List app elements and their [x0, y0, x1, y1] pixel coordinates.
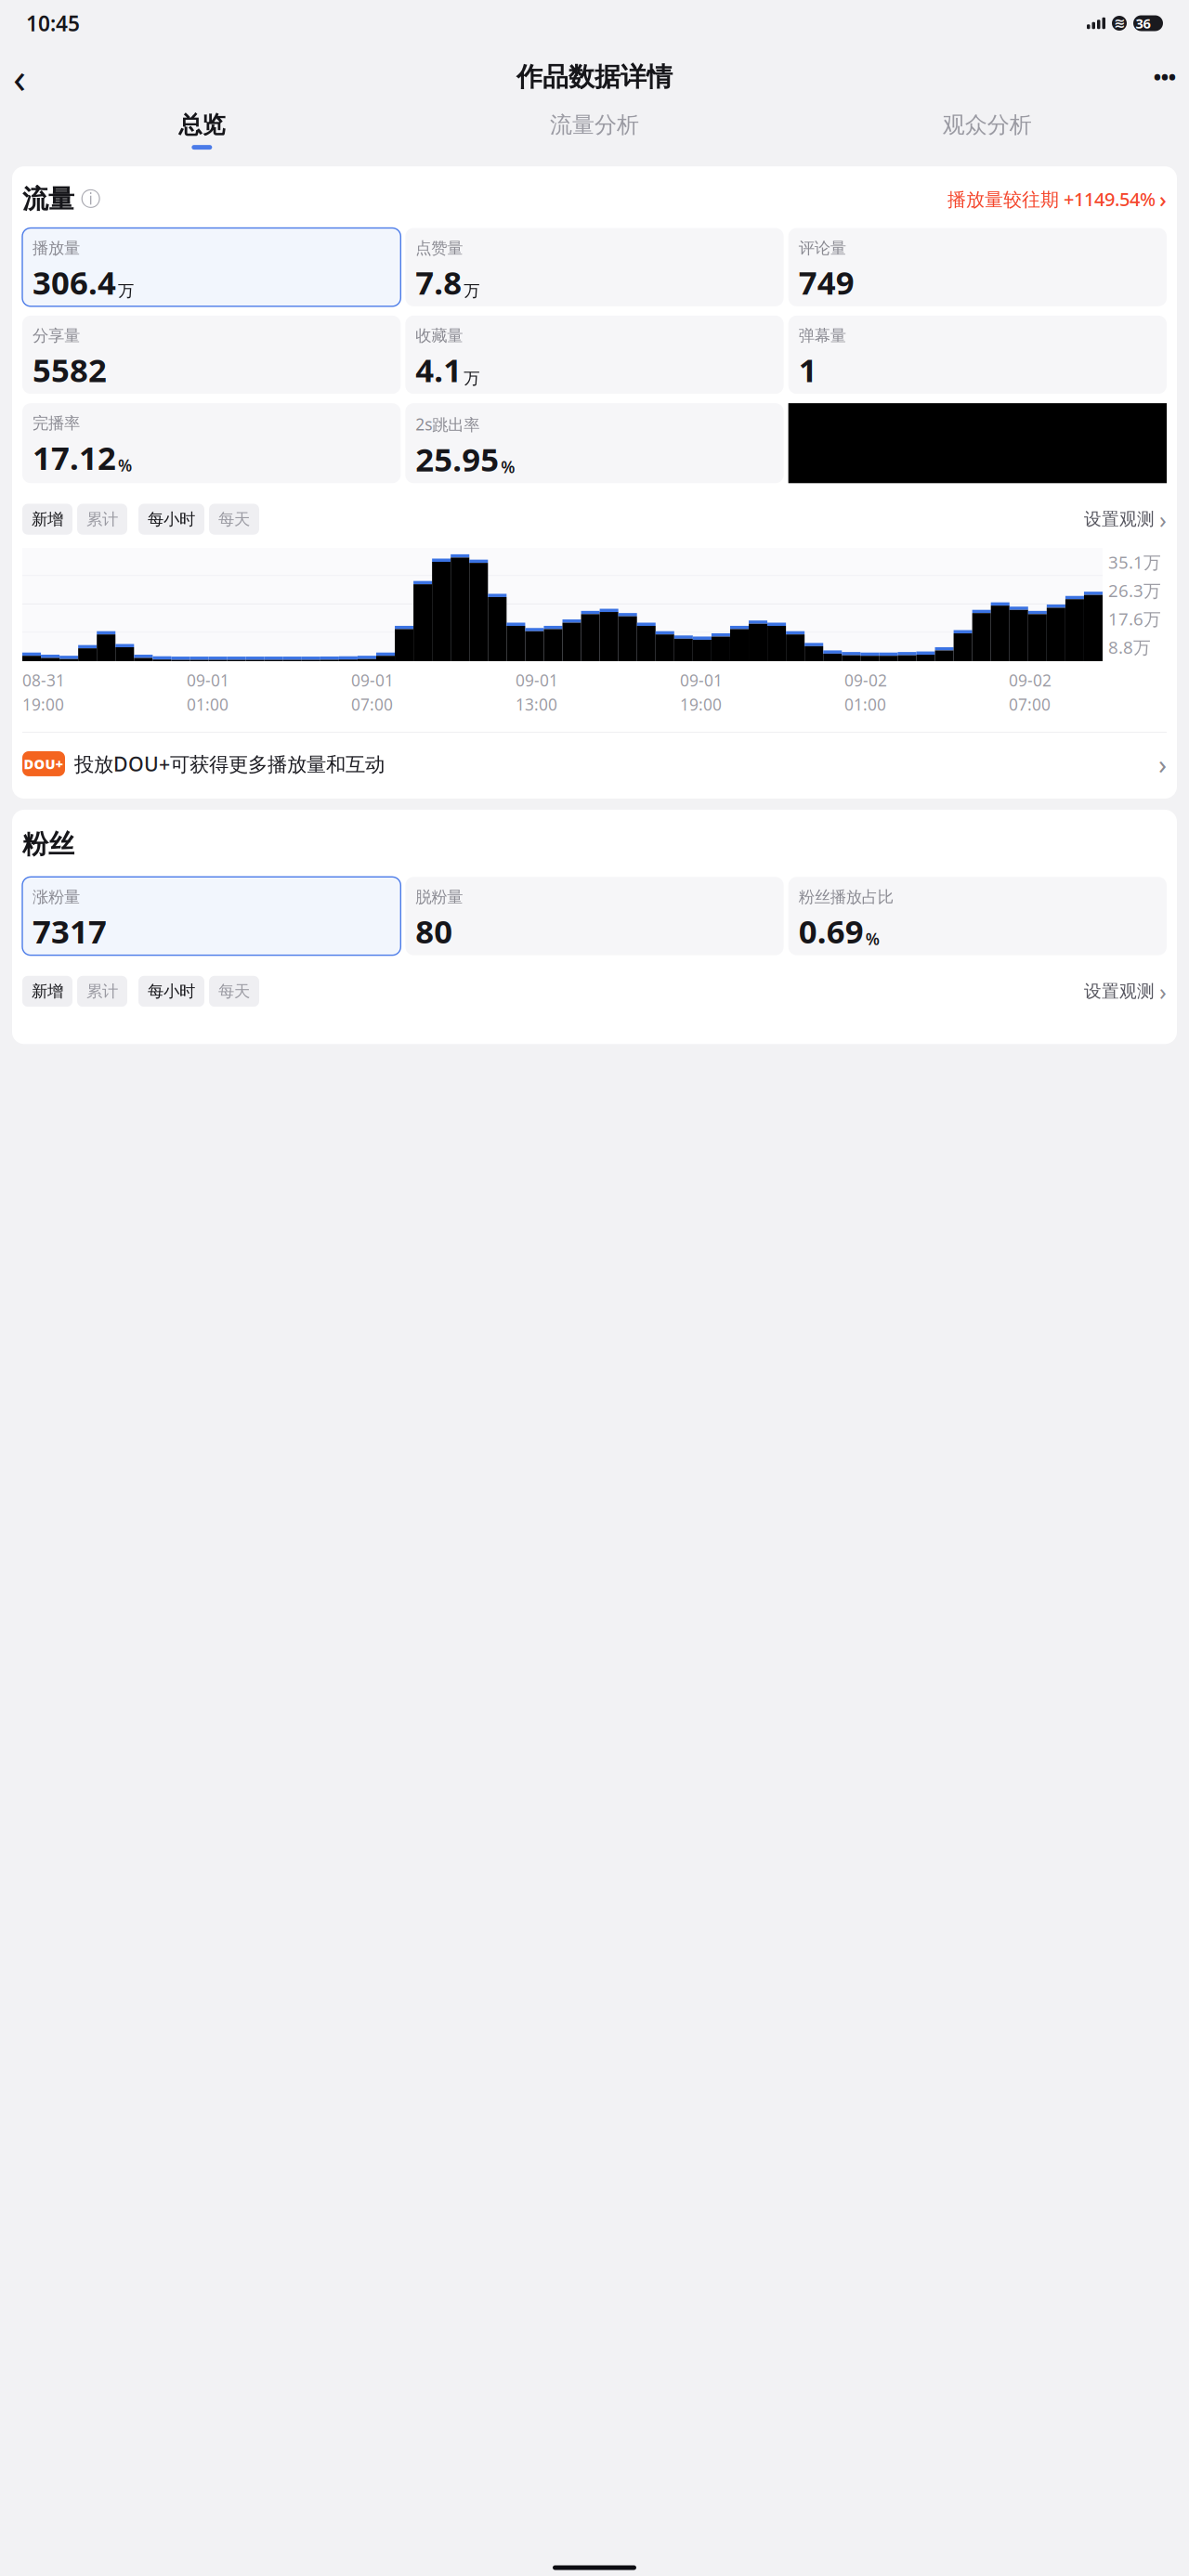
- staticText: ›: [1159, 184, 1167, 214]
- button[interactable]: Back: [13, 57, 54, 98]
- button[interactable]: 每小时: [138, 504, 204, 535]
- staticText: 09-01: [187, 669, 229, 691]
- staticText: 0.69: [799, 910, 864, 952]
- button[interactable]: 设置观测: [1084, 504, 1167, 535]
- staticText: 17.12: [33, 436, 116, 479]
- staticText: 涨粉量: [33, 887, 80, 907]
- staticText: 749: [799, 261, 854, 303]
- staticText: 设置观测: [1084, 509, 1155, 530]
- staticText: ‹: [13, 49, 26, 105]
- staticText: 每天: [218, 509, 250, 529]
- staticText: 流量: [22, 183, 74, 215]
- staticText: 36: [1136, 14, 1150, 32]
- staticText: 新增: [32, 981, 63, 1001]
- staticText: 累计: [86, 509, 118, 529]
- staticText: 7.8: [415, 261, 462, 303]
- staticText: 投放DOU+可获得更多播放量和互动: [74, 751, 385, 777]
- staticText: 01:00: [844, 694, 886, 715]
- staticText: 粉丝: [22, 828, 74, 860]
- button[interactable]: 评论量: [788, 228, 1167, 306]
- button[interactable]: 2s跳出率: [405, 403, 784, 483]
- staticText: ›: [1159, 504, 1167, 535]
- button[interactable]: 分享量: [22, 316, 401, 394]
- staticText: 每小时: [148, 509, 195, 529]
- staticText: 完播率: [33, 413, 80, 433]
- button[interactable]: 观众分析: [791, 111, 1183, 149]
- staticText: 17.6万: [1108, 607, 1161, 630]
- staticText: DOU+: [24, 755, 64, 773]
- staticText: %: [865, 928, 879, 950]
- staticText: ›: [1159, 976, 1167, 1007]
- staticText: ≋: [1114, 16, 1125, 31]
- staticText: 点赞量: [415, 238, 463, 258]
- button[interactable]: 粉丝播放占比: [788, 877, 1167, 955]
- staticText: 2s跳出率: [415, 413, 480, 435]
- staticText: 5582: [33, 348, 107, 391]
- button[interactable]: 弹幕量: [788, 316, 1167, 394]
- button[interactable]: 点赞量: [405, 228, 784, 306]
- staticText: 07:00: [351, 694, 393, 715]
- staticText: ›: [1158, 746, 1167, 782]
- staticText: 观众分析: [943, 111, 1032, 139]
- staticText: 播放量较往期 +1149.54%: [947, 187, 1156, 211]
- staticText: 09-02: [1009, 669, 1052, 691]
- staticText: %: [118, 455, 132, 476]
- staticText: 08-31: [22, 669, 65, 691]
- staticText: 25.95: [415, 438, 499, 480]
- staticText: 26.3万: [1108, 579, 1161, 602]
- staticText: 09-01: [680, 669, 723, 691]
- staticText: •••: [1154, 65, 1176, 89]
- staticText: 09-01: [516, 669, 558, 691]
- button[interactable]: 涨粉量: [22, 877, 401, 955]
- staticText: 19:00: [22, 694, 64, 715]
- button[interactable]: 播放量较往期 +1149.54%: [947, 184, 1167, 214]
- button[interactable]: 累计: [77, 504, 127, 535]
- staticText: 4.1: [415, 348, 462, 391]
- staticText: 306.4: [33, 261, 116, 303]
- button[interactable]: 新增: [22, 976, 72, 1007]
- staticText: 播放量: [33, 238, 80, 258]
- button[interactable]: 每天: [209, 504, 259, 535]
- staticText: 设置观测: [1084, 981, 1155, 1002]
- staticText: 7317: [33, 910, 107, 952]
- staticText: 万: [464, 281, 480, 301]
- staticText: 8.8万: [1108, 635, 1151, 658]
- button[interactable]: 完播率: [22, 403, 401, 483]
- staticText: 35.1万: [1108, 550, 1161, 574]
- staticText: 万: [118, 281, 134, 301]
- button[interactable]: 播放量: [22, 228, 401, 306]
- button[interactable]: 每天: [209, 976, 259, 1007]
- button[interactable]: 脱粉量: [405, 877, 784, 955]
- staticText: 每小时: [148, 981, 195, 1001]
- staticText: 07:00: [1009, 694, 1051, 715]
- button[interactable]: More options: [1135, 57, 1176, 98]
- staticText: 评论量: [799, 238, 846, 258]
- button[interactable]: 流量分析: [398, 111, 791, 149]
- staticText: 09-01: [351, 669, 394, 691]
- staticText: %: [501, 456, 515, 478]
- staticText: ⓘ: [81, 187, 100, 211]
- staticText: 01:00: [187, 694, 229, 715]
- staticText: 09-02: [844, 669, 887, 691]
- staticText: 总览: [179, 111, 225, 139]
- button[interactable]: 设置观测: [1084, 976, 1167, 1007]
- staticText: 流量分析: [550, 111, 639, 139]
- button[interactable]: 收藏量: [405, 316, 784, 394]
- staticText: 弹幕量: [799, 326, 846, 346]
- staticText: 脱粉量: [415, 887, 463, 907]
- button[interactable]: DOU+: [12, 733, 1177, 795]
- staticText: 作品数据详情: [516, 61, 673, 93]
- staticText: 80: [415, 910, 453, 952]
- button[interactable]: 每小时: [138, 976, 204, 1007]
- staticText: 每天: [218, 981, 250, 1001]
- staticText: 收藏量: [415, 326, 463, 346]
- staticText: 万: [464, 369, 480, 388]
- staticText: 1: [799, 348, 817, 391]
- button[interactable]: 累计: [77, 976, 127, 1007]
- button[interactable]: 总览: [6, 111, 398, 150]
- staticText: 累计: [86, 981, 118, 1001]
- staticText: 新增: [32, 509, 63, 529]
- button[interactable]: 新增: [22, 504, 72, 535]
- staticText: 13:00: [516, 694, 557, 715]
- staticText: 分享量: [33, 326, 80, 346]
